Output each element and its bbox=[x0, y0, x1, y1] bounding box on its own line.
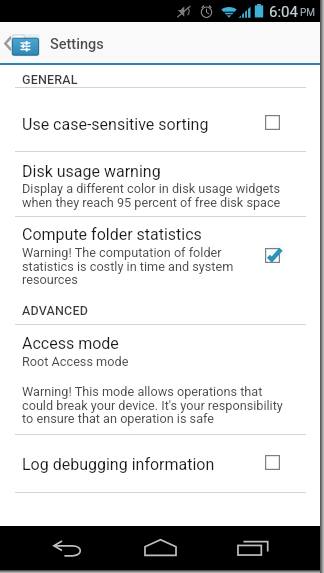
staticText: Settings bbox=[50, 36, 104, 53]
button[interactable]: Disk usage warning bbox=[0, 152, 320, 216]
staticText: PM bbox=[300, 7, 316, 19]
button[interactable]: Use case-sensitive sorting bbox=[0, 88, 320, 151]
button[interactable]: Navigate up bbox=[0, 22, 46, 63]
staticText: Access mode bbox=[22, 334, 119, 353]
staticText: Log debugging information bbox=[22, 455, 215, 474]
button[interactable]: Back bbox=[0, 526, 107, 570]
button[interactable]: Access mode bbox=[0, 325, 320, 434]
staticText: Warning! This mode allows operations tha… bbox=[22, 384, 283, 426]
staticText: Warning! The computation of folder stati… bbox=[22, 245, 234, 287]
staticText: ADVANCED bbox=[22, 303, 89, 318]
button[interactable]: Home bbox=[107, 526, 214, 570]
staticText: Use case-sensitive sorting bbox=[22, 115, 209, 134]
staticText: Compute folder statistics bbox=[22, 225, 202, 244]
staticText: Root Access mode bbox=[22, 354, 129, 369]
button[interactable]: Recent apps bbox=[214, 526, 320, 570]
staticText: Disk usage warning bbox=[22, 162, 161, 181]
staticText: Display a different color in disk usage … bbox=[22, 181, 281, 210]
button[interactable]: Log debugging information bbox=[0, 435, 320, 492]
staticText: GENERAL bbox=[22, 72, 78, 87]
button[interactable]: Compute folder statistics bbox=[0, 217, 320, 295]
staticText: 6:04 bbox=[269, 3, 298, 21]
